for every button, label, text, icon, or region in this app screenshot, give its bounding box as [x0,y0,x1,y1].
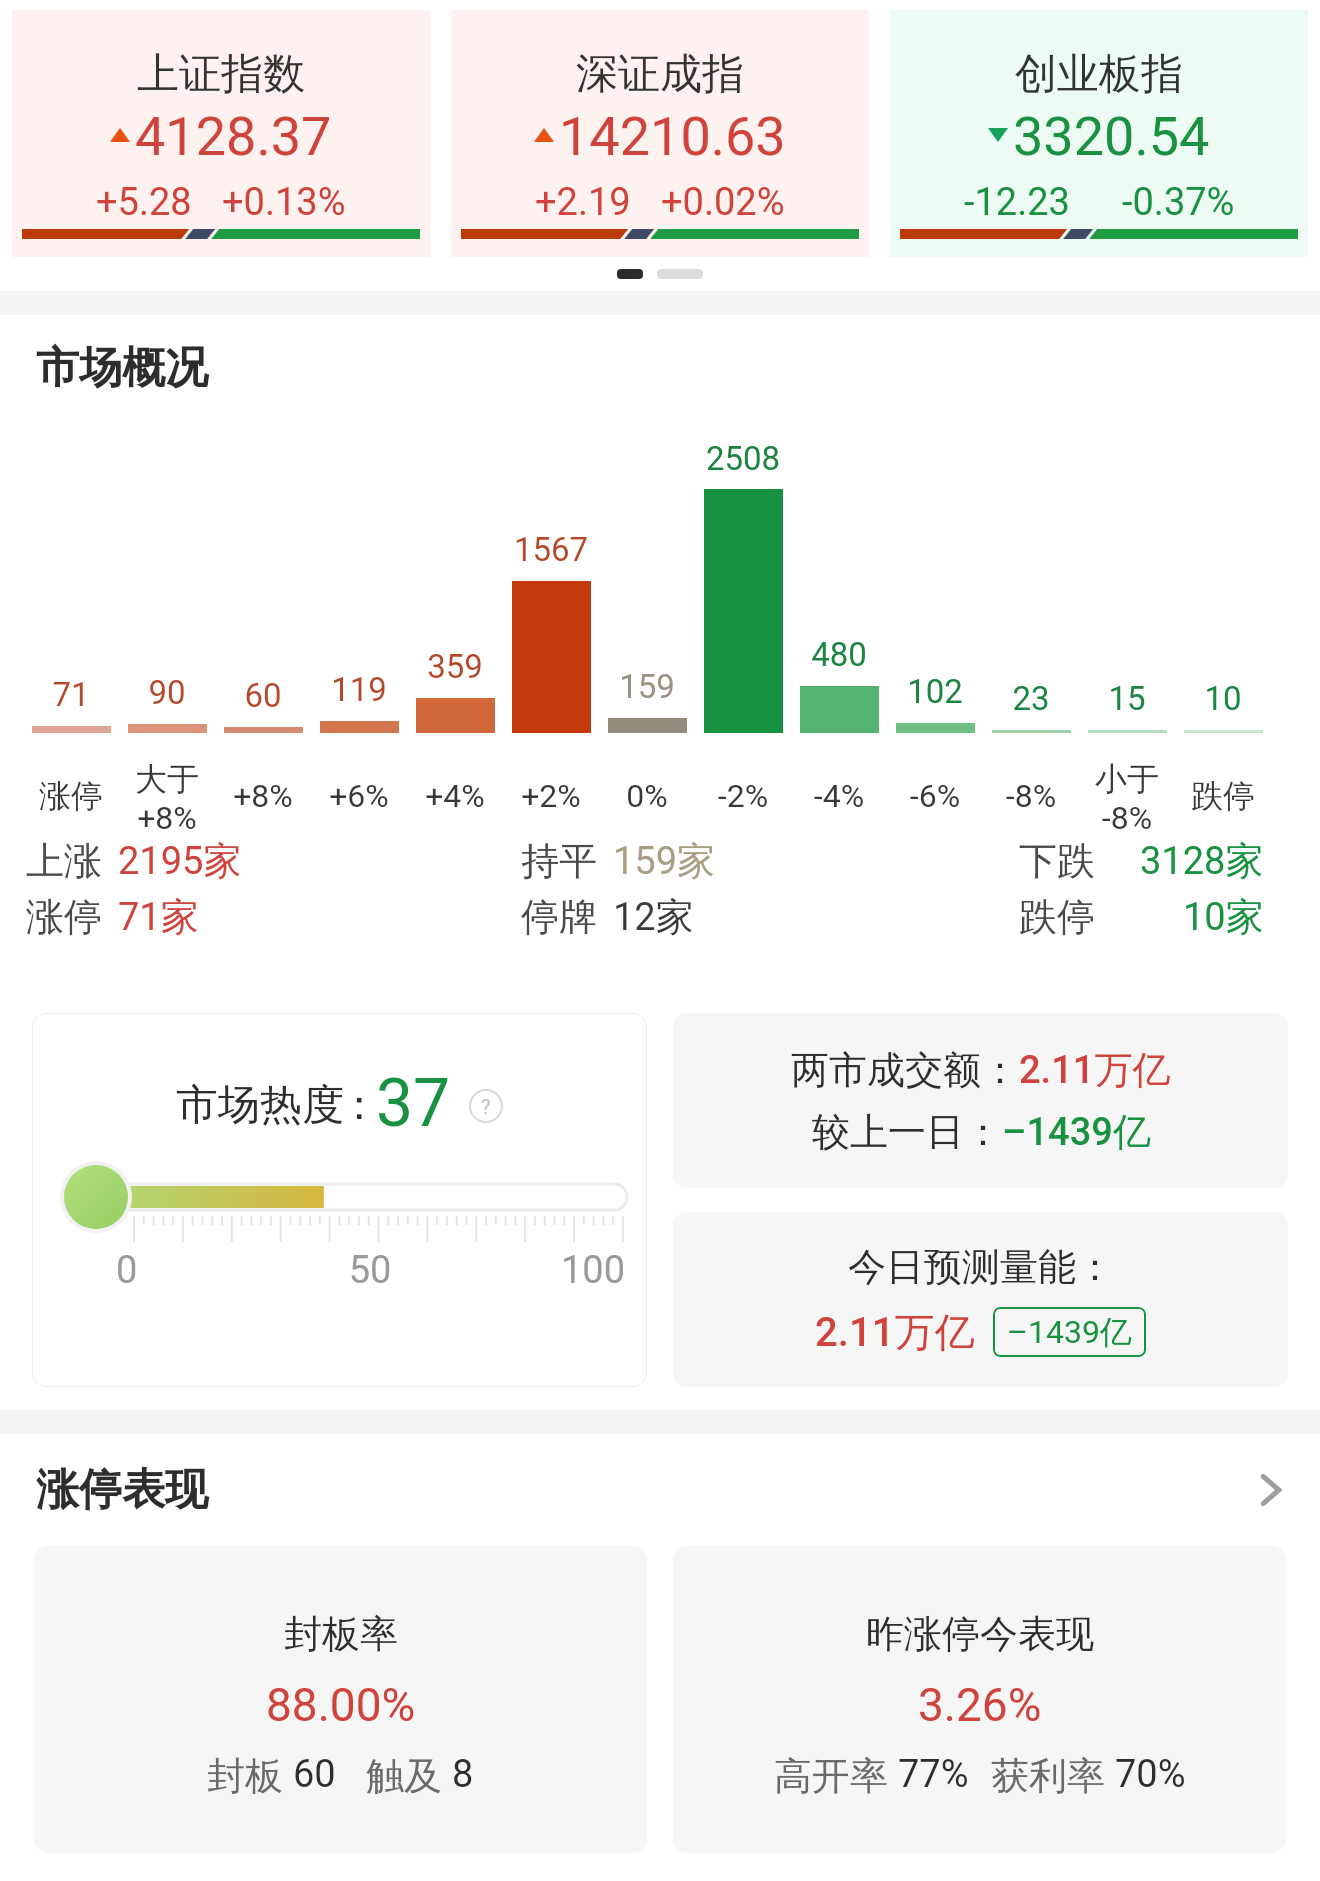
staticText: 14210.63 [559,105,786,168]
staticText: 持平 [521,837,597,885]
staticText: 3128家 [1140,837,1264,885]
button[interactable]: 市场热度 [32,1013,647,1387]
staticText: 市场热度 [176,1079,344,1132]
staticText: 77% [898,1752,969,1797]
staticText: 获利率 [991,1752,1115,1800]
staticText: 60 [215,676,311,715]
staticText: 23 [983,679,1079,718]
staticText: 下跌 [1019,837,1095,885]
staticText: +5.28 [96,180,192,225]
button[interactable]: 涨停表现 [36,1463,1288,1517]
staticText: 上涨 [26,837,102,885]
staticText: 大于 [119,759,215,799]
staticText: 涨停 [26,893,102,941]
staticText: 封板 [207,1752,293,1800]
button[interactable]: 封板率 [34,1546,647,1853]
staticText: 2.11万亿 [815,1307,975,1357]
button[interactable]: 今日预测量能： [673,1212,1288,1387]
staticText: 88.00% [266,1678,416,1732]
staticText: -12.23 [964,180,1070,225]
staticText: 3320.54 [1013,105,1210,168]
staticText: 37 [376,1065,451,1142]
staticText: 上证指数 [137,48,305,101]
staticText: 0 [116,1248,285,1293]
staticText: 4128.37 [135,105,332,168]
staticText: 2195家 [118,837,242,885]
staticText: -2% [695,777,791,815]
staticText: 跌停 [1019,893,1095,941]
staticText: ： [338,1079,380,1132]
staticText: 71家 [118,893,199,941]
staticText: -6% [887,777,983,815]
button[interactable]: 上证指数 [12,10,430,257]
staticText: +8% [119,799,215,833]
staticText: +4% [407,777,503,815]
staticText: 60 [293,1752,336,1797]
staticText: 较上一日： [812,1108,1002,1156]
staticText: +6% [311,777,407,815]
staticText: ? [481,1095,491,1118]
staticText: -4% [791,777,887,815]
staticText: 102 [887,672,983,711]
staticText: –1439亿 [1007,1312,1132,1352]
staticText: 15 [1079,679,1175,718]
staticText: 50 [285,1248,455,1293]
staticText: +2.19 [535,180,631,225]
staticText: 2508 [695,439,791,477]
staticText: +8% [215,777,311,815]
staticText: 12家 [613,893,694,941]
staticText: 市场概况 [36,341,208,395]
staticText: 359 [407,647,503,686]
staticText: -8% [983,777,1079,815]
staticText: -8% [1079,799,1175,833]
button[interactable]: 两市成交额： [673,1013,1288,1188]
staticText: 0% [599,777,695,815]
staticText: 71 [23,675,119,714]
staticText: 159家 [613,837,716,885]
staticText: +2% [503,777,599,815]
staticText: +0.02% [661,180,785,225]
staticText: 创业板指 [1015,48,1183,101]
staticText: 119 [311,670,407,709]
staticText: 涨停 [23,776,119,816]
button[interactable]: 创业板指 [890,10,1308,257]
staticText: 封板率 [284,1610,398,1658]
staticText: 159 [599,667,695,706]
other: Help [469,1089,503,1123]
staticText: +0.13% [222,180,346,225]
staticText: 70% [1115,1752,1186,1797]
button[interactable]: 深证成指 [451,10,869,257]
staticText: 3.26% [918,1678,1042,1732]
staticText: –1439亿 [1002,1108,1151,1156]
staticText: 10家 [1183,893,1264,941]
staticText: 小于 [1079,759,1175,799]
other: More [1250,1470,1290,1510]
staticText: 8 [452,1752,474,1797]
staticText: 停牌 [521,893,597,941]
staticText: 2.11万亿 [1019,1046,1171,1094]
staticText: -0.37% [1122,180,1235,225]
staticText: 深证成指 [576,48,744,101]
staticText: 1567 [503,530,599,569]
staticText: 480 [791,635,887,674]
staticText: 100 [455,1248,625,1293]
staticText: 昨涨停今表现 [866,1610,1094,1658]
button[interactable]: 昨涨停今表现 [673,1546,1286,1853]
staticText: 10 [1175,679,1271,718]
staticText: 触及 [366,1752,452,1800]
staticText: 跌停 [1175,776,1271,816]
staticText: 今日预测量能： [848,1243,1114,1291]
staticText: 90 [119,673,215,712]
staticText: 高开率 [774,1752,898,1800]
staticText: 两市成交额： [791,1046,1019,1094]
staticText: 涨停表现 [36,1463,208,1517]
